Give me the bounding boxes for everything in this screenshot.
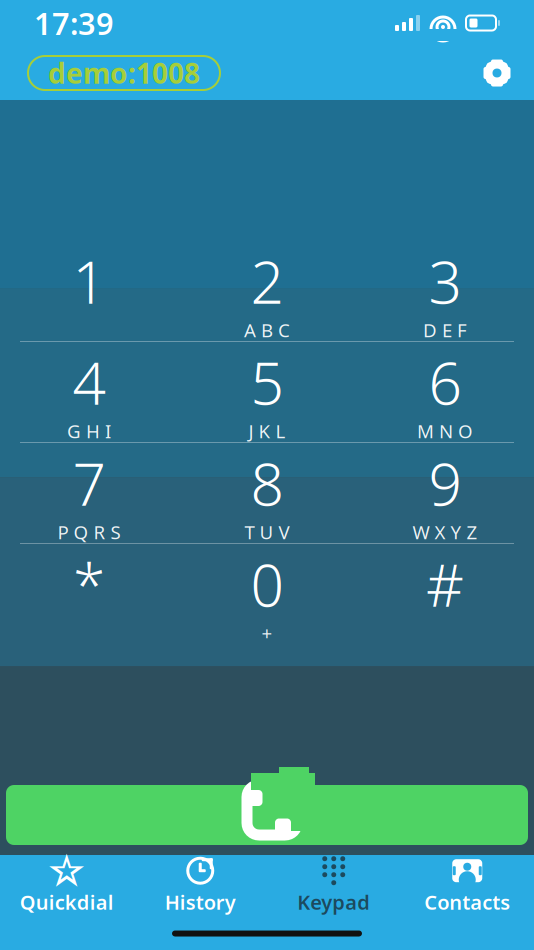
button[interactable]: 1	[0, 241, 178, 341]
button[interactable]: ★	[0, 855, 133, 917]
staticText: demo:1008	[48, 54, 200, 92]
staticText: 8	[250, 444, 283, 522]
staticText: ★	[55, 856, 78, 885]
staticText: 3	[428, 242, 461, 320]
staticText: 6	[428, 343, 461, 421]
staticText: D E F	[423, 318, 467, 342]
staticText: 2	[250, 242, 283, 320]
staticText: J K L	[248, 419, 285, 443]
button[interactable]: 0	[178, 544, 356, 644]
button[interactable]: Call	[6, 785, 528, 845]
button[interactable]: 5	[178, 342, 356, 442]
button[interactable]: 2	[178, 241, 356, 341]
button[interactable]: History	[133, 855, 267, 917]
staticText: 0	[250, 545, 283, 623]
button[interactable]: 3	[356, 241, 534, 341]
staticText: P Q R S	[57, 520, 120, 544]
staticText: Keypad	[297, 889, 370, 915]
staticText: G H I	[67, 419, 111, 443]
staticText: 5	[250, 343, 283, 421]
button[interactable]: Contacts	[400, 855, 534, 917]
staticText: A B C	[244, 318, 290, 342]
staticText: 9	[428, 444, 461, 522]
button[interactable]: 6	[356, 342, 534, 442]
staticText: +	[261, 621, 272, 645]
staticText: ★	[46, 845, 87, 896]
button[interactable]: Keypad	[267, 855, 400, 917]
staticText: 7	[72, 444, 105, 522]
button[interactable]: demo:1008	[28, 56, 220, 90]
button[interactable]: 9	[356, 443, 534, 543]
staticText: T U V	[244, 520, 289, 544]
staticText: M N O	[417, 419, 473, 443]
staticText: *	[73, 545, 105, 623]
staticText: History	[165, 889, 236, 915]
button[interactable]: 8	[178, 443, 356, 543]
staticText: 4	[72, 343, 105, 421]
staticText: Contacts	[424, 889, 510, 915]
button[interactable]: 4	[0, 342, 178, 442]
staticText: 1	[72, 242, 105, 320]
staticText: 17:39	[34, 3, 114, 43]
staticText: Quickdial	[20, 889, 114, 915]
staticText: #	[426, 545, 464, 623]
button[interactable]: 7	[0, 443, 178, 543]
staticText: W X Y Z	[412, 520, 477, 544]
button[interactable]: #	[356, 544, 534, 644]
button[interactable]: Settings	[474, 50, 520, 96]
button[interactable]: *	[0, 544, 178, 644]
